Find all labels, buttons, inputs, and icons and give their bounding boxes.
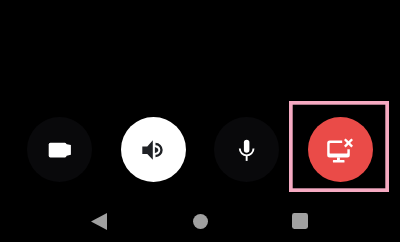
button[interactable]: Turn camera off	[27, 117, 92, 182]
button[interactable]: Recent apps	[250, 200, 400, 242]
button[interactable]: Stop presenting	[308, 117, 373, 182]
button[interactable]: Back	[0, 200, 150, 242]
button[interactable]: Home	[150, 200, 250, 242]
button[interactable]: Mute microphone	[214, 117, 279, 182]
button[interactable]: Speaker	[121, 117, 186, 182]
